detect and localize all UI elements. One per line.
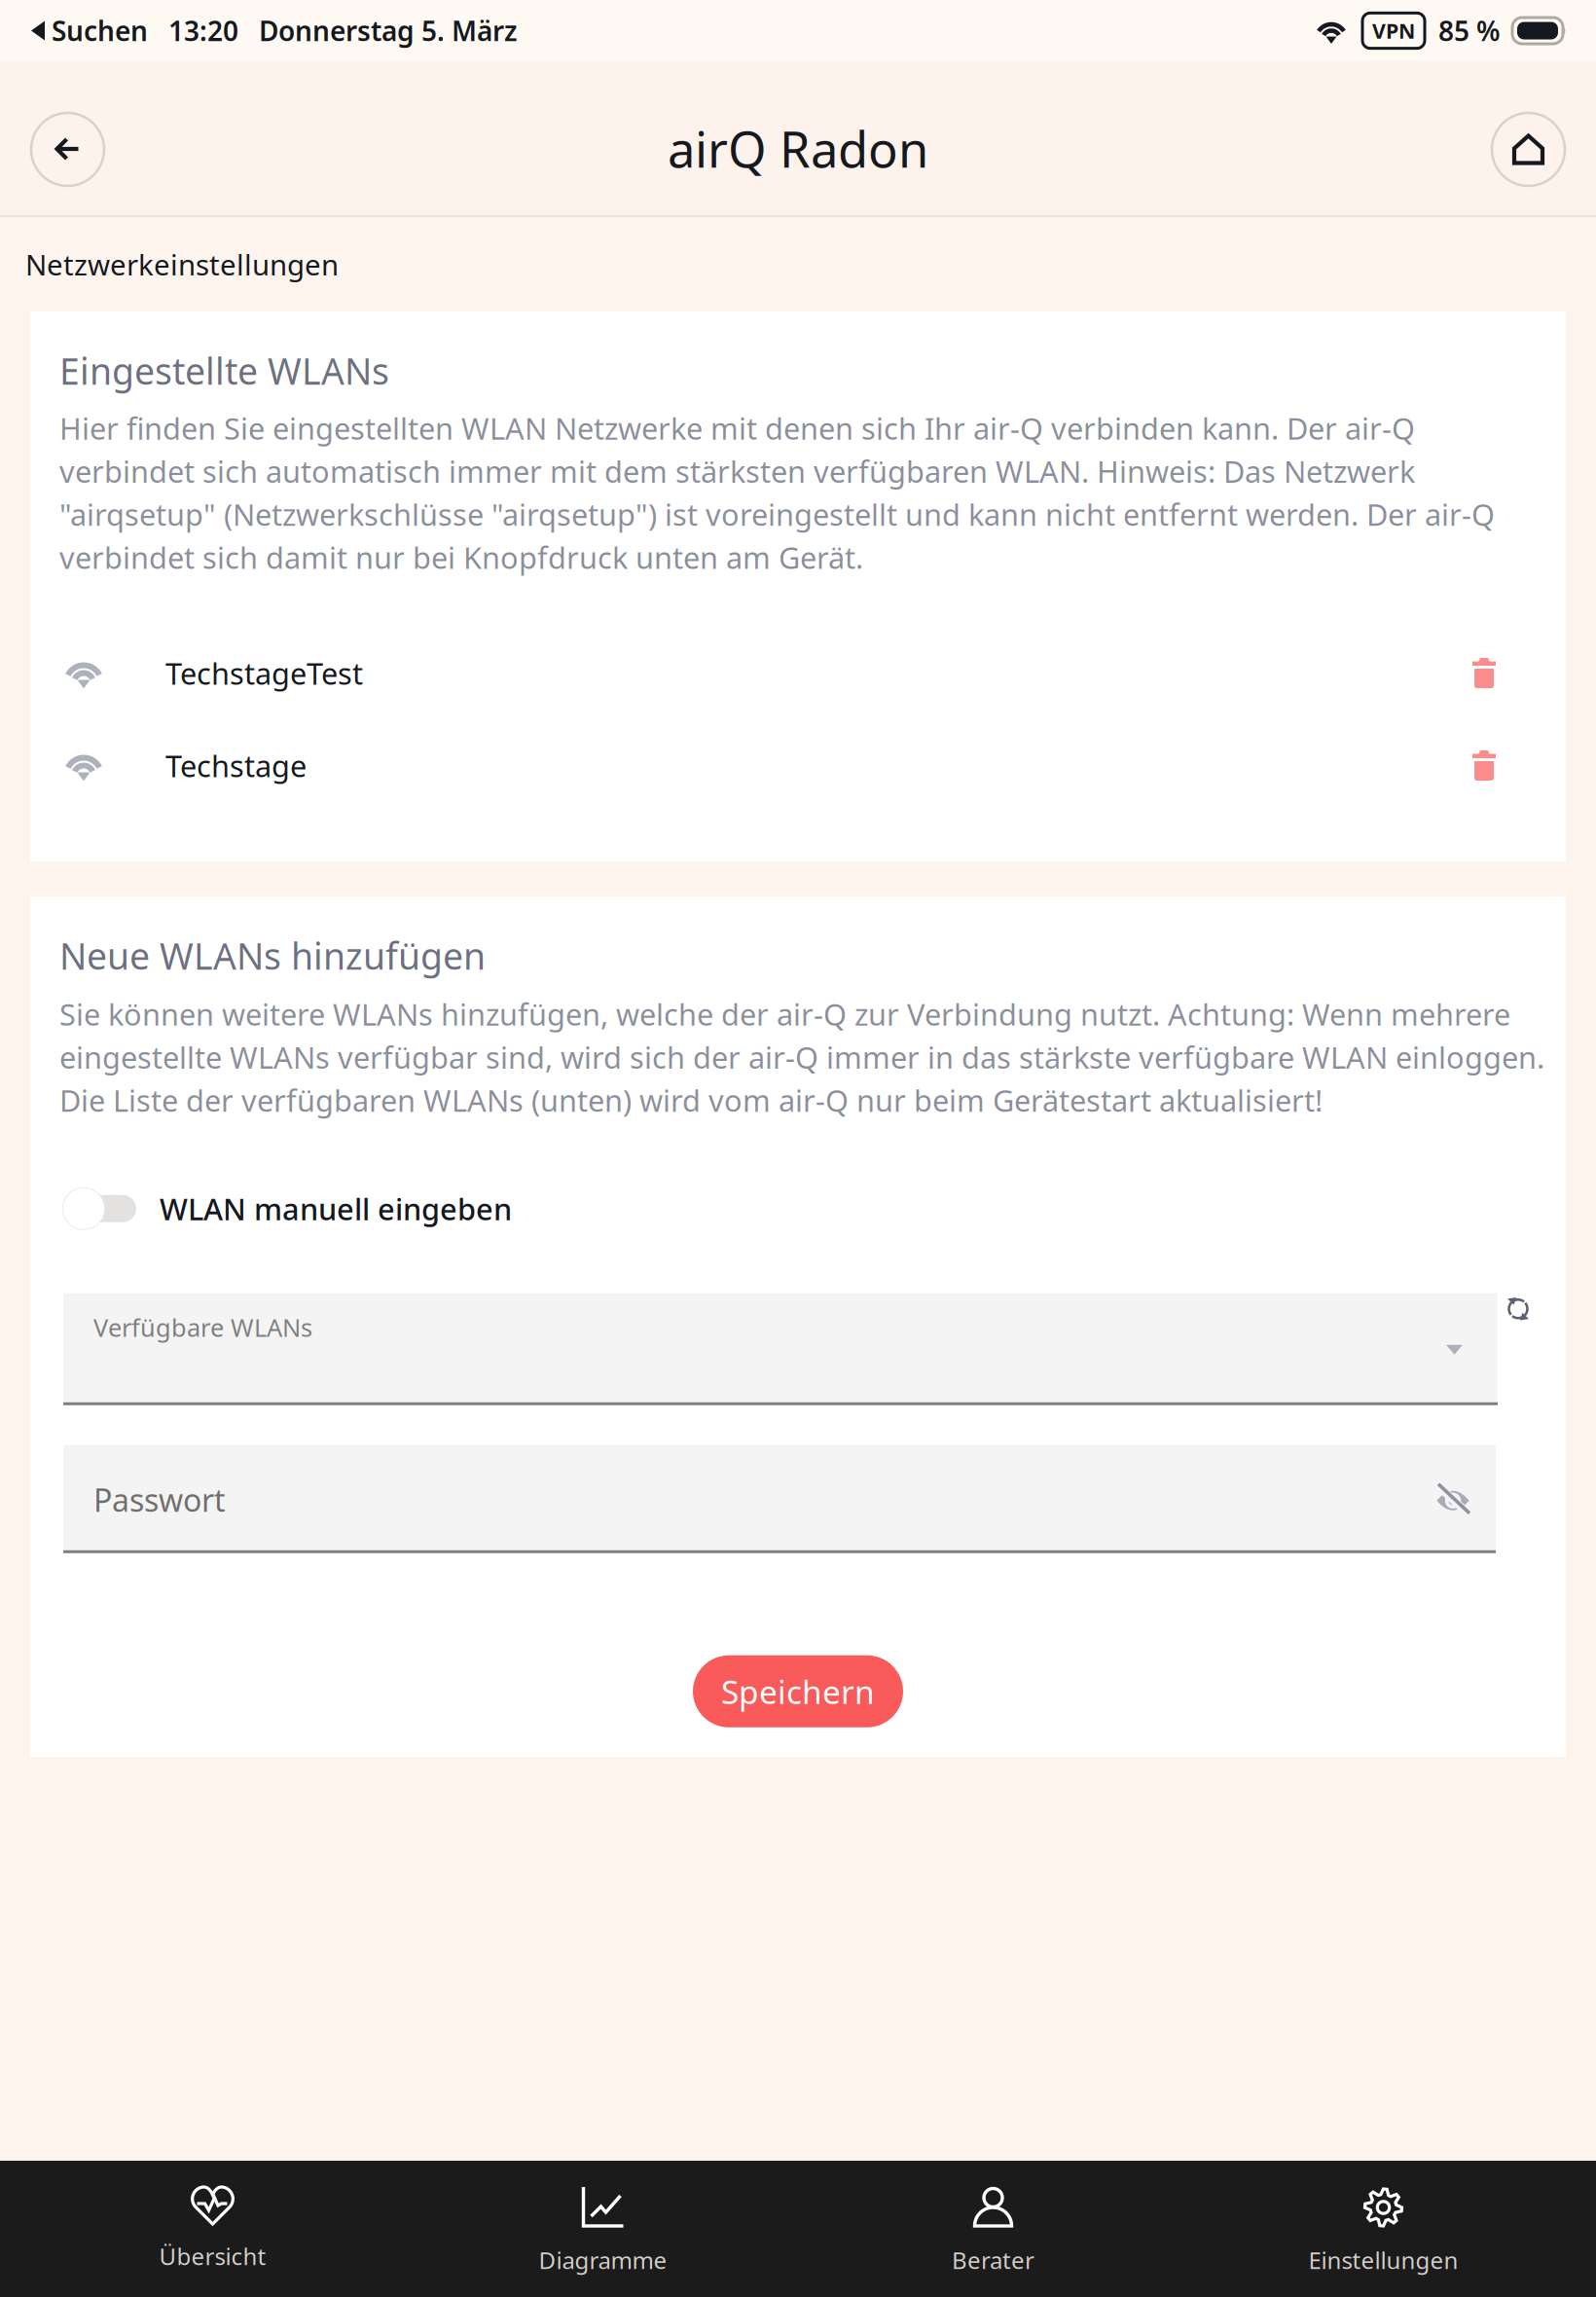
button[interactable]: Techstage [30,719,1566,812]
staticText: Verfügbare WLANs [93,1311,312,1344]
staticText: Techstage [165,746,307,785]
button[interactable]: Zurück [31,113,104,186]
staticText: Sie können weitere WLANs hinzufügen, wel… [59,994,1544,1120]
staticText: Neue WLANs hinzufügen [59,931,486,980]
staticText: Einstellungen [1308,2244,1458,2275]
staticText: Übersicht [159,2241,266,2272]
staticText: Netzwerkeinstellungen [25,245,339,283]
button[interactable]: TechstageTest [30,627,1566,719]
staticText: Diagramme [539,2244,667,2275]
button[interactable]: Diagramme [408,2161,798,2297]
button[interactable]: Startseite [1492,113,1565,186]
button[interactable]: WLAN manuell eingeben [30,1188,1566,1229]
staticText: WLAN manuell eingeben [160,1189,512,1228]
button[interactable]: Berater [798,2161,1188,2297]
staticText: Eingestellte WLANs [59,346,389,395]
staticText: airQ Radon [668,116,928,181]
staticText: TechstageTest [165,653,363,693]
button[interactable]: Einstellungen [1188,2161,1578,2297]
staticText: Suchen 13:20 Donnerstag 5. März [45,13,518,49]
staticText: Hier finden Sie eingestellten WLAN Netzw… [59,408,1495,577]
button[interactable]: Speichern [693,1655,903,1727]
staticText: 85 % [1438,13,1501,49]
staticText: Passwort [93,1479,226,1520]
staticText: Berater [952,2244,1034,2275]
staticText: Speichern [721,1670,875,1713]
button[interactable]: Übersicht [18,2161,408,2297]
staticText: VPN [1372,17,1415,44]
